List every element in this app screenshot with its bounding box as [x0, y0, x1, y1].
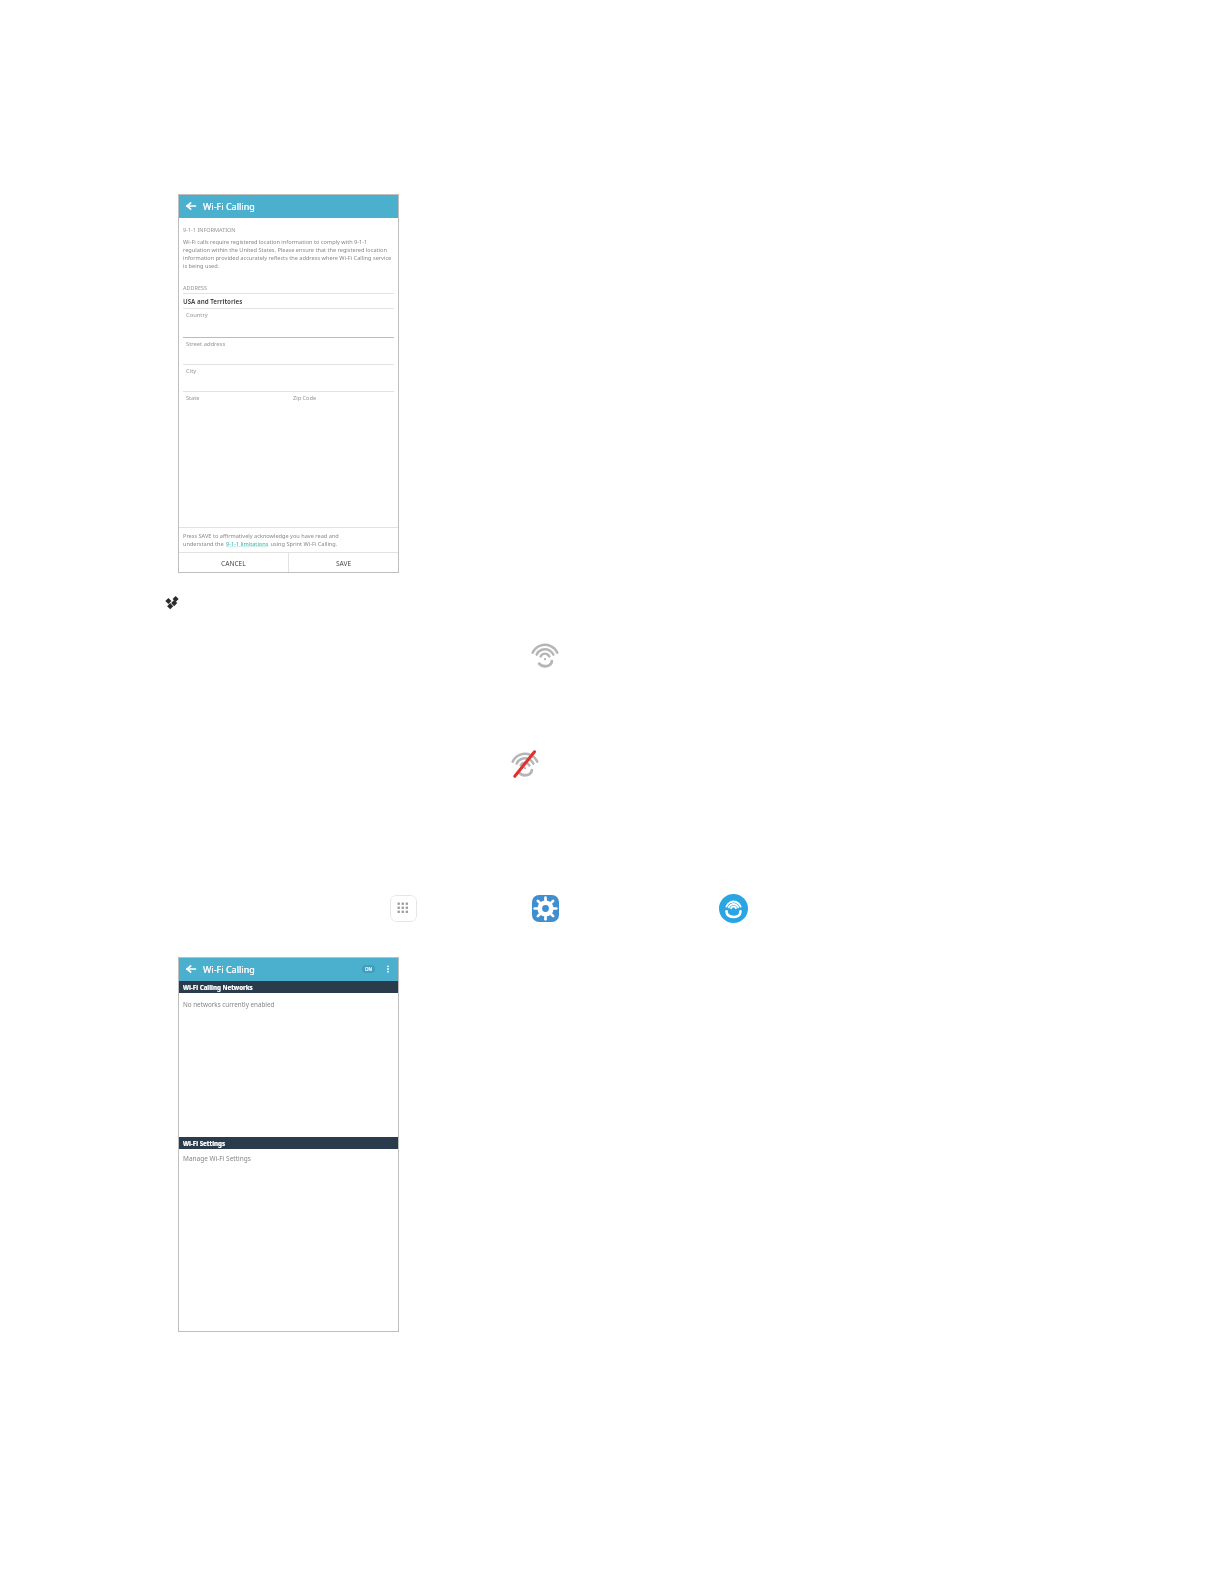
- staticText: Country: [186, 311, 208, 319]
- button[interactable]: Wi-Fi Calling: [719, 894, 748, 923]
- button[interactable]: Settings: [532, 895, 559, 922]
- button[interactable]: Back: [184, 199, 198, 213]
- staticText: Zip Code: [293, 394, 317, 402]
- button[interactable]: Street address: [183, 338, 394, 365]
- button[interactable]: SAVE: [289, 553, 399, 573]
- staticText: State: [186, 394, 200, 402]
- staticText: Wi-Fi calls require registered location …: [183, 238, 394, 270]
- staticText: Wi-Fi Calling: [203, 200, 255, 212]
- other: Wi-Fi Calling disabled icon: [508, 745, 542, 779]
- button[interactable]: Wi-Fi Calling toggle: [362, 965, 375, 973]
- button[interactable]: City: [183, 365, 394, 392]
- other: Wi-Fi Calling enabled icon: [528, 636, 562, 670]
- staticText: No networks currently enabled: [183, 1000, 275, 1009]
- button[interactable]: Manage Wi-Fi Settings: [178, 1149, 399, 1167]
- staticText: using Sprint Wi-Fi Calling.: [269, 540, 338, 548]
- staticText: USA and Territories: [183, 297, 243, 305]
- staticText: CANCEL: [221, 559, 246, 568]
- staticText: Street address: [186, 340, 226, 348]
- staticText: Press SAVE to affirmatively acknowledge …: [183, 532, 339, 540]
- staticText: Wi-Fi Settings: [183, 1139, 226, 1147]
- staticText: 9-1-1 limitations: [226, 540, 269, 548]
- button[interactable]: Country: [183, 309, 394, 338]
- staticText: understand the: [183, 540, 226, 548]
- staticText: SAVE: [336, 559, 352, 568]
- staticText: ADDRESS: [183, 284, 208, 291]
- button[interactable]: More options: [382, 963, 394, 975]
- staticText: Manage Wi-Fi Settings: [183, 1154, 251, 1163]
- staticText: Wi-Fi Calling Networks: [183, 983, 253, 991]
- button[interactable]: CANCEL: [178, 553, 288, 573]
- button[interactable]: Apps: [390, 895, 417, 922]
- button[interactable]: Back: [184, 962, 198, 976]
- staticText: City: [186, 367, 197, 375]
- staticText: Wi-Fi Calling: [203, 963, 255, 975]
- staticText: 9-1-1 INFORMATION: [183, 226, 236, 233]
- staticText: ON: [365, 966, 372, 972]
